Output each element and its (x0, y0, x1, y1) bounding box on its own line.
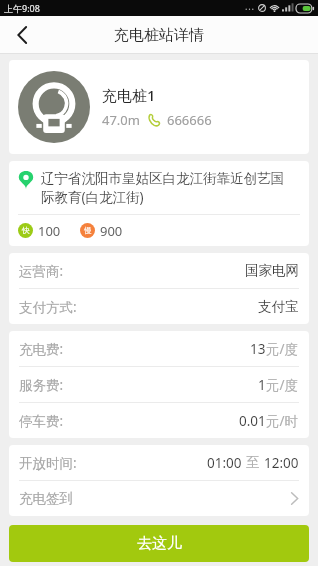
button[interactable]: Back (0, 16, 44, 54)
staticText: 1 (258, 376, 266, 394)
staticText: 充电签到 (19, 490, 73, 507)
staticText: 支付宝 (258, 298, 299, 315)
button[interactable]: 充电费: (9, 331, 309, 366)
button[interactable]: 运营商: (9, 253, 309, 288)
staticText: 0.01 (239, 412, 266, 430)
button[interactable]: 辽宁省沈阳市皇姑区白龙江街靠近创艺国际教育(白龙江街) (9, 161, 309, 246)
button[interactable]: 停车费: (9, 403, 309, 438)
staticText: 去这儿 (137, 534, 182, 553)
staticText: 至 (246, 454, 260, 471)
staticText: 服务费: (19, 376, 64, 394)
staticText: 900 (100, 222, 123, 240)
staticText: 国家电网 (245, 262, 299, 279)
button[interactable]: 服务费: (9, 367, 309, 402)
staticText: 元/时 (266, 412, 299, 430)
button[interactable]: 开放时间: (9, 445, 309, 480)
staticText: 元/度 (266, 340, 299, 358)
button[interactable]: 去这儿 (9, 525, 309, 562)
staticText: 100 (38, 222, 61, 240)
other: Open (290, 491, 299, 506)
button[interactable]: 充电桩1 (9, 60, 309, 154)
staticText: 上午9:08 (4, 2, 40, 14)
staticText: 47.0m (102, 111, 140, 129)
staticText: 01:00 (207, 454, 242, 472)
staticText: 运营商: (19, 262, 64, 280)
staticText: 慢 (84, 226, 92, 235)
staticText: 元/度 (266, 376, 299, 394)
staticText: 快 (22, 226, 30, 235)
button[interactable]: 支付方式: (9, 289, 309, 324)
staticText: 辽宁省沈阳市皇姑区白龙江街靠近创艺国际教育(白龙江街) (41, 170, 297, 206)
staticText: 支付方式: (19, 298, 77, 316)
staticText: 充电桩站详情 (114, 26, 204, 45)
staticText: 充电桩1 (102, 85, 156, 105)
staticText: 666666 (167, 111, 212, 129)
staticText: 13 (250, 340, 266, 358)
staticText: 停车费: (19, 412, 64, 430)
staticText: 开放时间: (19, 454, 77, 472)
button[interactable]: 充电签到 (9, 481, 309, 516)
staticText: 12:00 (264, 454, 299, 472)
staticText: 充电费: (19, 340, 64, 358)
